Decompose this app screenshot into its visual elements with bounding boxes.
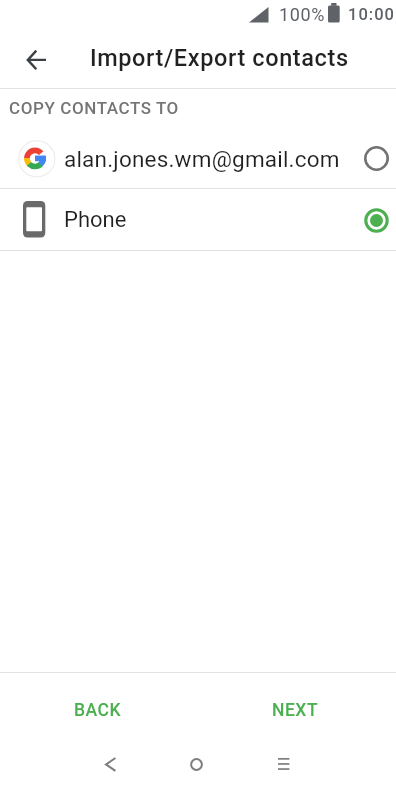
button[interactable]: Phone xyxy=(0,189,396,250)
staticText: alan.jones.wm@gmail.com xyxy=(64,146,340,172)
button[interactable] xyxy=(88,742,132,786)
staticText: 100% xyxy=(279,4,325,25)
button[interactable]: NEXT xyxy=(245,685,345,735)
button[interactable]: alan.jones.wm@gmail.com xyxy=(0,129,396,188)
button[interactable] xyxy=(261,742,305,786)
staticText: BACK xyxy=(74,700,121,721)
button[interactable]: BACK xyxy=(47,685,147,735)
staticText: COPY CONTACTS TO xyxy=(9,98,179,118)
button[interactable] xyxy=(174,742,218,786)
staticText: Phone xyxy=(64,207,127,233)
staticText: 10:00 xyxy=(348,5,395,24)
staticText: NEXT xyxy=(272,700,319,721)
staticText: Import/Export contacts xyxy=(90,44,349,72)
button[interactable] xyxy=(16,39,58,81)
